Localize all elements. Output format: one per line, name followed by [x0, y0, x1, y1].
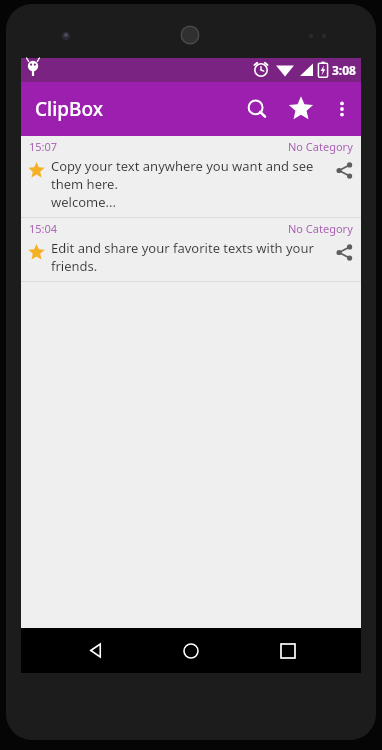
- button[interactable]: 15:04: [21, 218, 361, 281]
- staticText: 15:07: [29, 139, 58, 154]
- staticText: 3:08: [332, 62, 356, 78]
- button[interactable]: Favorites: [279, 87, 323, 131]
- button[interactable]: 15:07: [21, 136, 361, 217]
- staticText: ClipBox: [35, 96, 104, 122]
- staticText: them here.: [51, 175, 118, 193]
- button[interactable]: Recents: [265, 628, 311, 673]
- button[interactable]: Share: [327, 157, 361, 183]
- staticText: welcome...: [51, 193, 116, 211]
- staticText: No Category: [288, 139, 353, 154]
- staticText: 15:04: [29, 221, 58, 236]
- staticText: friends.: [51, 257, 98, 275]
- button[interactable]: Home: [168, 628, 214, 673]
- button[interactable]: Share: [327, 239, 361, 265]
- staticText: Edit and share your favorite texts with …: [51, 239, 314, 257]
- staticText: No Category: [288, 221, 353, 236]
- button[interactable]: More options: [323, 90, 361, 128]
- button[interactable]: Back: [72, 628, 118, 673]
- button[interactable]: Search: [235, 87, 279, 131]
- staticText: Copy your text anywhere you want and see: [51, 157, 314, 175]
